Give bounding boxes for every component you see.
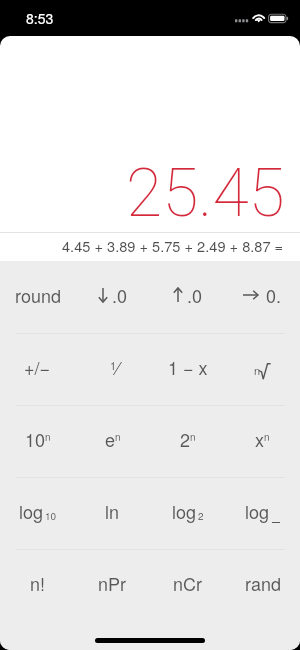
button[interactable]: x to the n bbox=[225, 405, 300, 477]
button[interactable]: factorial bbox=[0, 549, 75, 621]
staticText: .0 bbox=[112, 282, 128, 308]
staticText: +/− bbox=[24, 354, 51, 380]
button[interactable]: log base two bbox=[150, 477, 225, 549]
staticText: log bbox=[245, 498, 270, 524]
button[interactable]: nCr bbox=[150, 549, 225, 621]
button[interactable]: round down bbox=[75, 261, 150, 333]
staticText: n! bbox=[30, 570, 46, 596]
button[interactable]: one over x bbox=[75, 333, 150, 405]
staticText: 8:53 bbox=[26, 8, 54, 28]
staticText: 10 bbox=[45, 509, 57, 523]
staticText: 10n bbox=[25, 426, 51, 452]
button[interactable]: natural log bbox=[75, 477, 150, 549]
button[interactable]: log base n bbox=[225, 477, 300, 549]
button[interactable]: round up bbox=[150, 261, 225, 333]
staticText: 2 bbox=[198, 509, 204, 523]
staticText: ln bbox=[105, 498, 120, 524]
button[interactable]: ten to the n bbox=[0, 405, 75, 477]
button[interactable]: e to the n bbox=[75, 405, 150, 477]
button[interactable]: log base ten bbox=[0, 477, 75, 549]
staticText: log bbox=[172, 498, 197, 524]
staticText: log bbox=[19, 498, 44, 524]
staticText: 1 − x bbox=[168, 354, 208, 380]
staticText: round bbox=[15, 282, 61, 308]
button[interactable]: one minus x bbox=[150, 333, 225, 405]
staticText: 1⁄ bbox=[110, 354, 120, 380]
button[interactable]: nth root bbox=[225, 333, 300, 405]
staticText: 4.45 + 3.89 + 5.75 + 2.49 + 8.87 = bbox=[62, 235, 284, 256]
staticText: xn bbox=[255, 426, 270, 452]
button[interactable]: two to the n bbox=[150, 405, 225, 477]
staticText: rand bbox=[245, 570, 281, 596]
staticText: nPr bbox=[98, 570, 127, 596]
staticText: 2n bbox=[180, 426, 196, 452]
button[interactable]: round bbox=[0, 261, 75, 333]
button[interactable]: truncate bbox=[225, 261, 300, 333]
staticText: nCr bbox=[173, 570, 202, 596]
staticText: .0 bbox=[187, 282, 203, 308]
button[interactable]: nPr bbox=[75, 549, 150, 621]
staticText: n bbox=[254, 362, 261, 378]
button[interactable]: rand bbox=[225, 549, 300, 621]
button[interactable]: plus minus bbox=[0, 333, 75, 405]
staticText: 25.45 bbox=[126, 155, 285, 232]
staticText: 0. bbox=[266, 282, 282, 308]
staticText: en bbox=[105, 426, 121, 452]
